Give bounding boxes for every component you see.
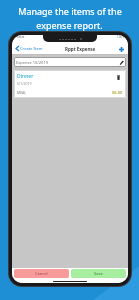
staticText: MEAL: [17, 90, 27, 95]
staticText: Pocket: [15, 35, 25, 39]
staticText: Manage the items of the: [18, 5, 122, 17]
staticText: Cancel: [35, 271, 48, 276]
button[interactable]: Expense 10/2019: [14, 57, 126, 67]
button[interactable]: Create Item: [15, 45, 44, 52]
staticText: 56.00: [112, 90, 123, 95]
staticText: Dinner: [17, 73, 34, 80]
button[interactable]: Delete item: [114, 73, 123, 82]
button[interactable]: Dinner: [14, 70, 126, 98]
staticText: Save: [94, 271, 103, 276]
staticText: Expense 10/2019: [16, 60, 48, 65]
staticText: Rppt Expense: [65, 46, 96, 52]
staticText: expense report.: [36, 19, 103, 31]
staticText: Create Item: [20, 46, 43, 51]
staticText: 5/1/2019: [17, 81, 32, 86]
staticText: 100%: [117, 35, 125, 39]
button[interactable]: Save: [71, 269, 126, 278]
button[interactable]: Cancel: [14, 269, 69, 278]
button[interactable]: Add item: [117, 45, 125, 53]
